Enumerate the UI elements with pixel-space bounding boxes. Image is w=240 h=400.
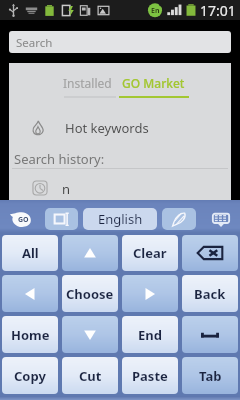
staticText: Cut bbox=[79, 367, 102, 385]
button[interactable]: left bbox=[2, 275, 58, 312]
button[interactable]: Hide keyboard bbox=[210, 208, 232, 230]
button[interactable]: Paste bbox=[122, 357, 178, 394]
staticText: Copy bbox=[14, 367, 46, 385]
staticText: Paste bbox=[132, 367, 168, 385]
button[interactable]: n bbox=[9, 172, 231, 203]
staticText: n bbox=[62, 180, 71, 198]
button[interactable]: Copy bbox=[2, 357, 58, 394]
button[interactable]: Back bbox=[182, 275, 238, 312]
button[interactable]: Home bbox=[2, 316, 58, 353]
button[interactable]: GO Keyboard menu bbox=[9, 207, 33, 231]
staticText: GO Market bbox=[122, 75, 185, 91]
staticText: Installed bbox=[63, 75, 112, 91]
staticText: Back bbox=[194, 285, 226, 303]
button[interactable]: Search bbox=[9, 31, 231, 53]
button[interactable]: End bbox=[122, 316, 178, 353]
staticText: Search bbox=[16, 35, 53, 51]
staticText: GO bbox=[18, 215, 29, 225]
button[interactable]: GO Market bbox=[113, 63, 193, 96]
button[interactable]: Theme bbox=[162, 208, 196, 230]
staticText: Hot keywords bbox=[65, 119, 149, 137]
staticText: English bbox=[98, 210, 143, 228]
staticText: End bbox=[138, 326, 162, 344]
button[interactable]: Cut bbox=[62, 357, 118, 394]
button[interactable]: All bbox=[2, 235, 58, 271]
staticText: Tab bbox=[199, 367, 222, 385]
staticText: All bbox=[22, 244, 39, 262]
staticText: Choose bbox=[66, 285, 114, 303]
button[interactable]: down bbox=[62, 316, 118, 353]
button[interactable]: English bbox=[83, 208, 157, 230]
button[interactable]: Clear bbox=[122, 235, 178, 271]
staticText: Search history: bbox=[14, 150, 105, 168]
button[interactable]: up bbox=[62, 235, 118, 271]
button[interactable]: Installed bbox=[51, 63, 123, 96]
staticText: Clear bbox=[133, 244, 167, 262]
button[interactable]: back bbox=[182, 235, 238, 271]
staticText: En bbox=[151, 6, 160, 16]
staticText: Home bbox=[11, 326, 50, 344]
button[interactable]: right bbox=[122, 275, 178, 312]
button[interactable]: Hot keywords bbox=[9, 106, 231, 150]
staticText: 17:01 bbox=[200, 1, 236, 20]
button[interactable]: Keyboard layout bbox=[45, 208, 78, 230]
button[interactable]: space bbox=[182, 316, 238, 353]
button[interactable]: Tab bbox=[182, 357, 238, 394]
button[interactable]: Choose bbox=[62, 275, 118, 312]
